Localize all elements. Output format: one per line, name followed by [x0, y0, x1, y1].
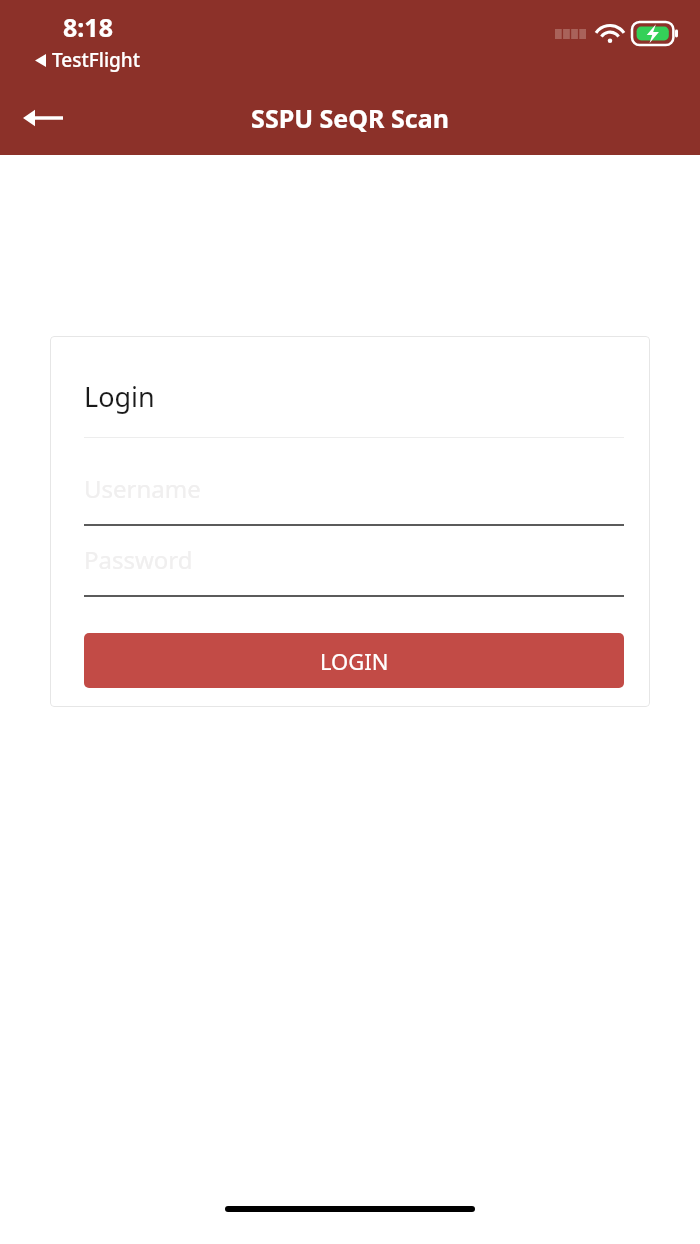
- staticText: TestFlight: [52, 47, 141, 73]
- staticText: Password: [84, 543, 193, 576]
- staticText: SSPU SeQR Scan: [251, 101, 449, 135]
- staticText: LOGIN: [320, 646, 389, 676]
- button[interactable]: Username: [84, 472, 624, 526]
- staticText: 8:18: [63, 10, 113, 44]
- staticText: Login: [84, 378, 155, 415]
- button[interactable]: LOGIN: [84, 633, 624, 688]
- staticText: Username: [84, 472, 201, 505]
- button[interactable]: Back: [12, 87, 74, 149]
- button[interactable]: Password: [84, 543, 624, 597]
